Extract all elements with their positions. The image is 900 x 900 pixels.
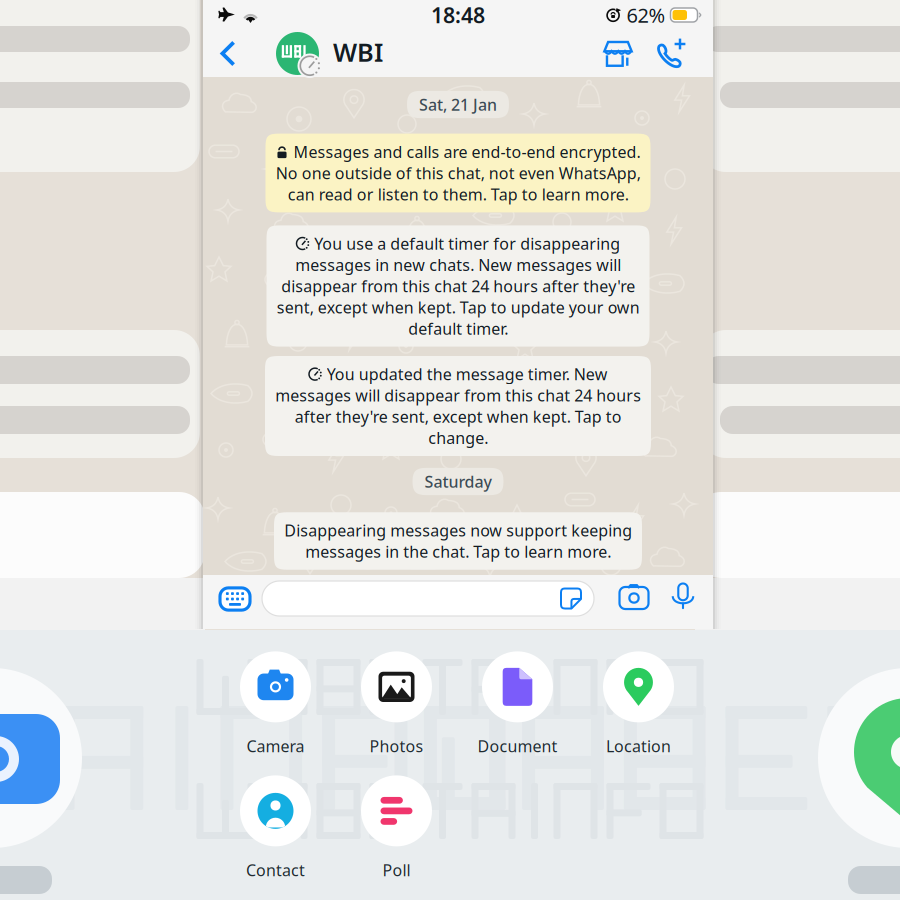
staticText: Document <box>477 735 557 757</box>
staticText: Saturday <box>424 471 491 492</box>
button[interactable]: Voice call <box>656 38 686 68</box>
button[interactable]: WBI <box>276 32 456 78</box>
staticText: messages will disappear from this chat 2… <box>275 385 641 448</box>
staticText: You use a default timer for disappearing <box>314 233 620 254</box>
staticText: 18:48 <box>431 1 485 29</box>
button[interactable]: Location <box>578 651 699 757</box>
staticText: 62% <box>626 2 665 28</box>
button[interactable]: Messages and calls are end-to-end encryp… <box>265 134 650 212</box>
button[interactable]: You use a default timer for disappearing <box>266 225 649 347</box>
staticText: WBI <box>333 35 383 69</box>
staticText: Camera <box>246 735 304 757</box>
button[interactable]: Camera <box>215 651 336 757</box>
button[interactable]: Back <box>220 40 235 66</box>
button[interactable]: You updated the message timer. New <box>265 356 651 456</box>
staticText: Contact <box>246 859 305 881</box>
button[interactable]: Poll <box>336 775 457 881</box>
button[interactable]: Disappearing messages now support keepin… <box>274 512 642 570</box>
button[interactable]: Contact <box>215 775 336 881</box>
button[interactable]: Keyboard <box>220 588 250 610</box>
staticText: Messages and calls are end-to-end encryp… <box>293 141 640 162</box>
staticText: You updated the message timer. New <box>327 363 608 385</box>
staticText: Location <box>606 735 671 757</box>
button[interactable]: Voice message <box>669 583 696 610</box>
button[interactable]: Document <box>457 651 578 757</box>
button[interactable] <box>262 581 594 616</box>
button[interactable]: Business catalog <box>603 38 632 67</box>
staticText: No one outside of this chat, not even Wh… <box>275 162 640 205</box>
staticText: messages in new chats. New messages will… <box>276 254 639 339</box>
staticText: Disappearing messages now support keepin… <box>284 520 632 562</box>
staticText: Photos <box>369 735 423 757</box>
staticText: Sat, 21 Jan <box>419 94 497 115</box>
button[interactable]: Camera <box>619 585 648 611</box>
staticText: Poll <box>382 859 410 881</box>
button[interactable]: Photos <box>336 651 457 757</box>
